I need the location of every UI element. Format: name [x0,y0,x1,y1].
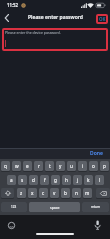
button[interactable]: a [7,175,16,185]
button[interactable]: s [18,175,27,185]
staticText: r [38,163,40,169]
button[interactable]: g [51,175,60,185]
button[interactable]: o [89,161,98,171]
staticText: y [59,163,62,169]
staticText: j [77,177,79,183]
button[interactable]: e [23,161,32,171]
button[interactable]: n [72,188,81,198]
staticText: f [44,177,46,183]
button[interactable] [6,220,17,231]
button[interactable]: q [1,161,10,171]
staticText: Please enter password [28,14,83,21]
staticText: 11:52 [7,2,19,8]
button[interactable]: return [82,202,109,212]
button[interactable]: z [17,188,26,198]
staticText: m [85,190,90,196]
button[interactable]: OK [96,14,108,24]
button[interactable]: x [28,188,37,198]
staticText: a [10,177,13,183]
button[interactable]: j [73,175,82,185]
staticText: e [26,163,29,169]
staticText: n [75,190,78,196]
staticText: s [21,177,24,183]
button[interactable]: Done [85,148,107,159]
button[interactable]: d [29,175,38,185]
button[interactable]: y [56,161,65,171]
button[interactable]: v [50,188,59,198]
staticText: OK [99,16,106,22]
staticText: p [103,163,106,169]
button[interactable]: r [34,161,43,171]
staticText: i [82,163,84,169]
staticText: t [49,163,51,169]
button[interactable]: l [95,175,104,185]
button[interactable]: 123 [1,202,27,212]
button[interactable]: i [78,161,87,171]
staticText: v [53,190,56,196]
button[interactable]: k [84,175,93,185]
button[interactable]: m [83,188,92,198]
button[interactable]: b [61,188,70,198]
staticText: 123 [11,205,17,209]
staticText: x [31,190,34,196]
staticText: u [70,163,73,169]
staticText: q [4,163,7,169]
button[interactable]: Please enter the device password. [2,28,108,51]
button[interactable]: f [40,175,49,185]
button[interactable]: p [100,161,109,171]
staticText: c [42,190,45,196]
staticText: l [99,177,101,183]
staticText: b [64,190,67,196]
button[interactable]: t [45,161,54,171]
staticText: g [54,177,57,183]
staticText: return [91,205,101,209]
staticText: o [92,163,95,169]
staticText: z [20,190,23,196]
button[interactable]: u [67,161,76,171]
button[interactable] [1,188,14,198]
staticText: space [50,205,60,210]
staticText: Done [90,150,103,157]
button[interactable] [92,219,103,232]
button[interactable] [1,11,13,25]
button[interactable]: w [12,161,21,171]
staticText: Please enter the device password. [5,30,61,35]
button[interactable]: space [29,202,80,212]
button[interactable] [96,188,110,198]
staticText: k [87,177,90,183]
staticText: w [15,163,19,169]
staticText: d [32,177,35,183]
staticText: h [65,177,68,183]
button[interactable]: c [39,188,48,198]
button[interactable]: h [62,175,71,185]
